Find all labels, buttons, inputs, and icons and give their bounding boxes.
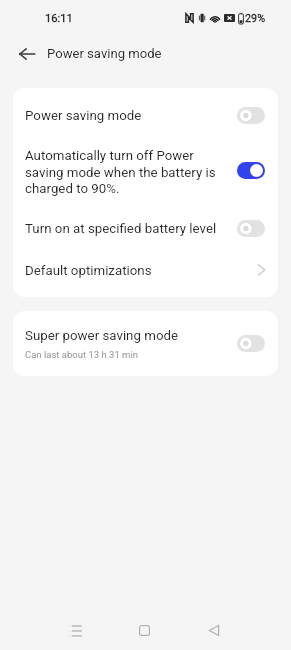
staticText: Default optimizations [25,263,152,279]
button[interactable]: Toggle off [237,107,265,124]
staticText: Power saving mode [47,46,162,61]
button[interactable]: Back [11,38,43,70]
button[interactable] [13,207,278,250]
button[interactable]: Home [124,610,165,650]
staticText: 16:11 [45,12,73,25]
staticText: Turn on at specified battery level [25,221,217,237]
button[interactable] [13,132,278,207]
button[interactable]: Back [193,610,234,650]
button[interactable]: Super power saving mode [13,311,278,376]
button[interactable]: Toggle off [237,335,265,352]
staticText: Super power saving mode [25,328,179,344]
staticText: 29% [245,12,266,24]
staticText: Can last about 13 h 31 min [25,349,138,360]
button[interactable]: Toggle on [237,162,265,179]
button[interactable] [13,88,278,132]
button[interactable]: Recent apps [54,610,95,650]
staticText: Power saving mode [25,108,142,124]
staticText: Automatically turn off Power saving mode… [25,148,225,196]
button[interactable] [13,250,278,297]
button[interactable]: Toggle off [237,220,265,237]
